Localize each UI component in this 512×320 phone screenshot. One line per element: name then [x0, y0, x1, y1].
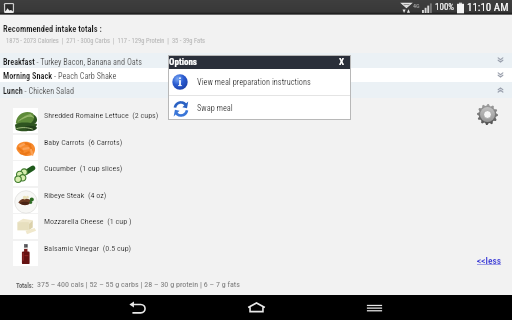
staticText: 4G	[413, 2, 420, 9]
button[interactable]: Balsamic Vinegar (0.5 cup)	[0, 241, 512, 266]
button[interactable]: Shredded Romaine Lettuce (2 cups)	[0, 108, 512, 133]
button[interactable]: View meal preparation instructions	[169, 69, 350, 95]
staticText: Ribeye Steak (4 oz)	[44, 191, 107, 200]
staticText: Shredded Romaine Lettuce (2 cups)	[44, 111, 159, 120]
button[interactable]: Baby Carrots (6 Carrots)	[0, 135, 512, 160]
staticText: Recommended intake totals :	[3, 24, 102, 34]
staticText: Lunch - Chicken Salad	[3, 86, 75, 96]
staticText: View meal preparation instructions	[197, 77, 311, 87]
button[interactable]: Mozzarella Cheese (1 cup )	[0, 214, 512, 239]
staticText: Balsamic Vinegar (0.5 cup)	[44, 244, 132, 253]
button[interactable]: Options	[169, 56, 350, 69]
staticText: Swap meal	[197, 103, 233, 113]
button[interactable]: Home	[236, 295, 276, 320]
staticText: Totals:	[16, 282, 34, 290]
button[interactable]: Back	[118, 295, 158, 320]
button[interactable]: X	[339, 57, 345, 68]
button[interactable]: Ribeye Steak (4 oz)	[0, 188, 512, 213]
staticText: Morning Snack - Peach Carb Shake	[3, 71, 117, 81]
staticText: 1875 - 2073 Calories | 271 - 300g Carbs …	[6, 37, 206, 45]
button[interactable]: Breakfast - Turkey Bacon, Banana and Oat…	[0, 53, 512, 68]
button[interactable]: Recent apps	[354, 295, 394, 320]
staticText: Cucumber (1 cup slices)	[44, 164, 123, 173]
staticText: Baby Carrots (6 Carrots)	[44, 138, 123, 147]
staticText: 100%	[435, 2, 455, 13]
button[interactable]: Settings	[477, 104, 498, 125]
staticText: 375 – 400 cals | 52 – 55 g carbs | 28 – …	[37, 280, 240, 289]
button[interactable]: Morning Snack - Peach Carb Shake	[0, 68, 512, 82]
staticText: Mozzarella Cheese (1 cup )	[44, 217, 132, 226]
button[interactable]: <<less	[477, 255, 502, 266]
staticText: Options	[169, 57, 197, 68]
staticText: Breakfast - Turkey Bacon, Banana and Oat…	[3, 57, 142, 67]
button[interactable]: Lunch - Chicken Salad	[0, 82, 512, 98]
staticText: 11:10 AM	[467, 1, 509, 14]
button[interactable]: Swap meal	[169, 96, 350, 119]
button[interactable]: Cucumber (1 cup slices)	[0, 161, 512, 186]
